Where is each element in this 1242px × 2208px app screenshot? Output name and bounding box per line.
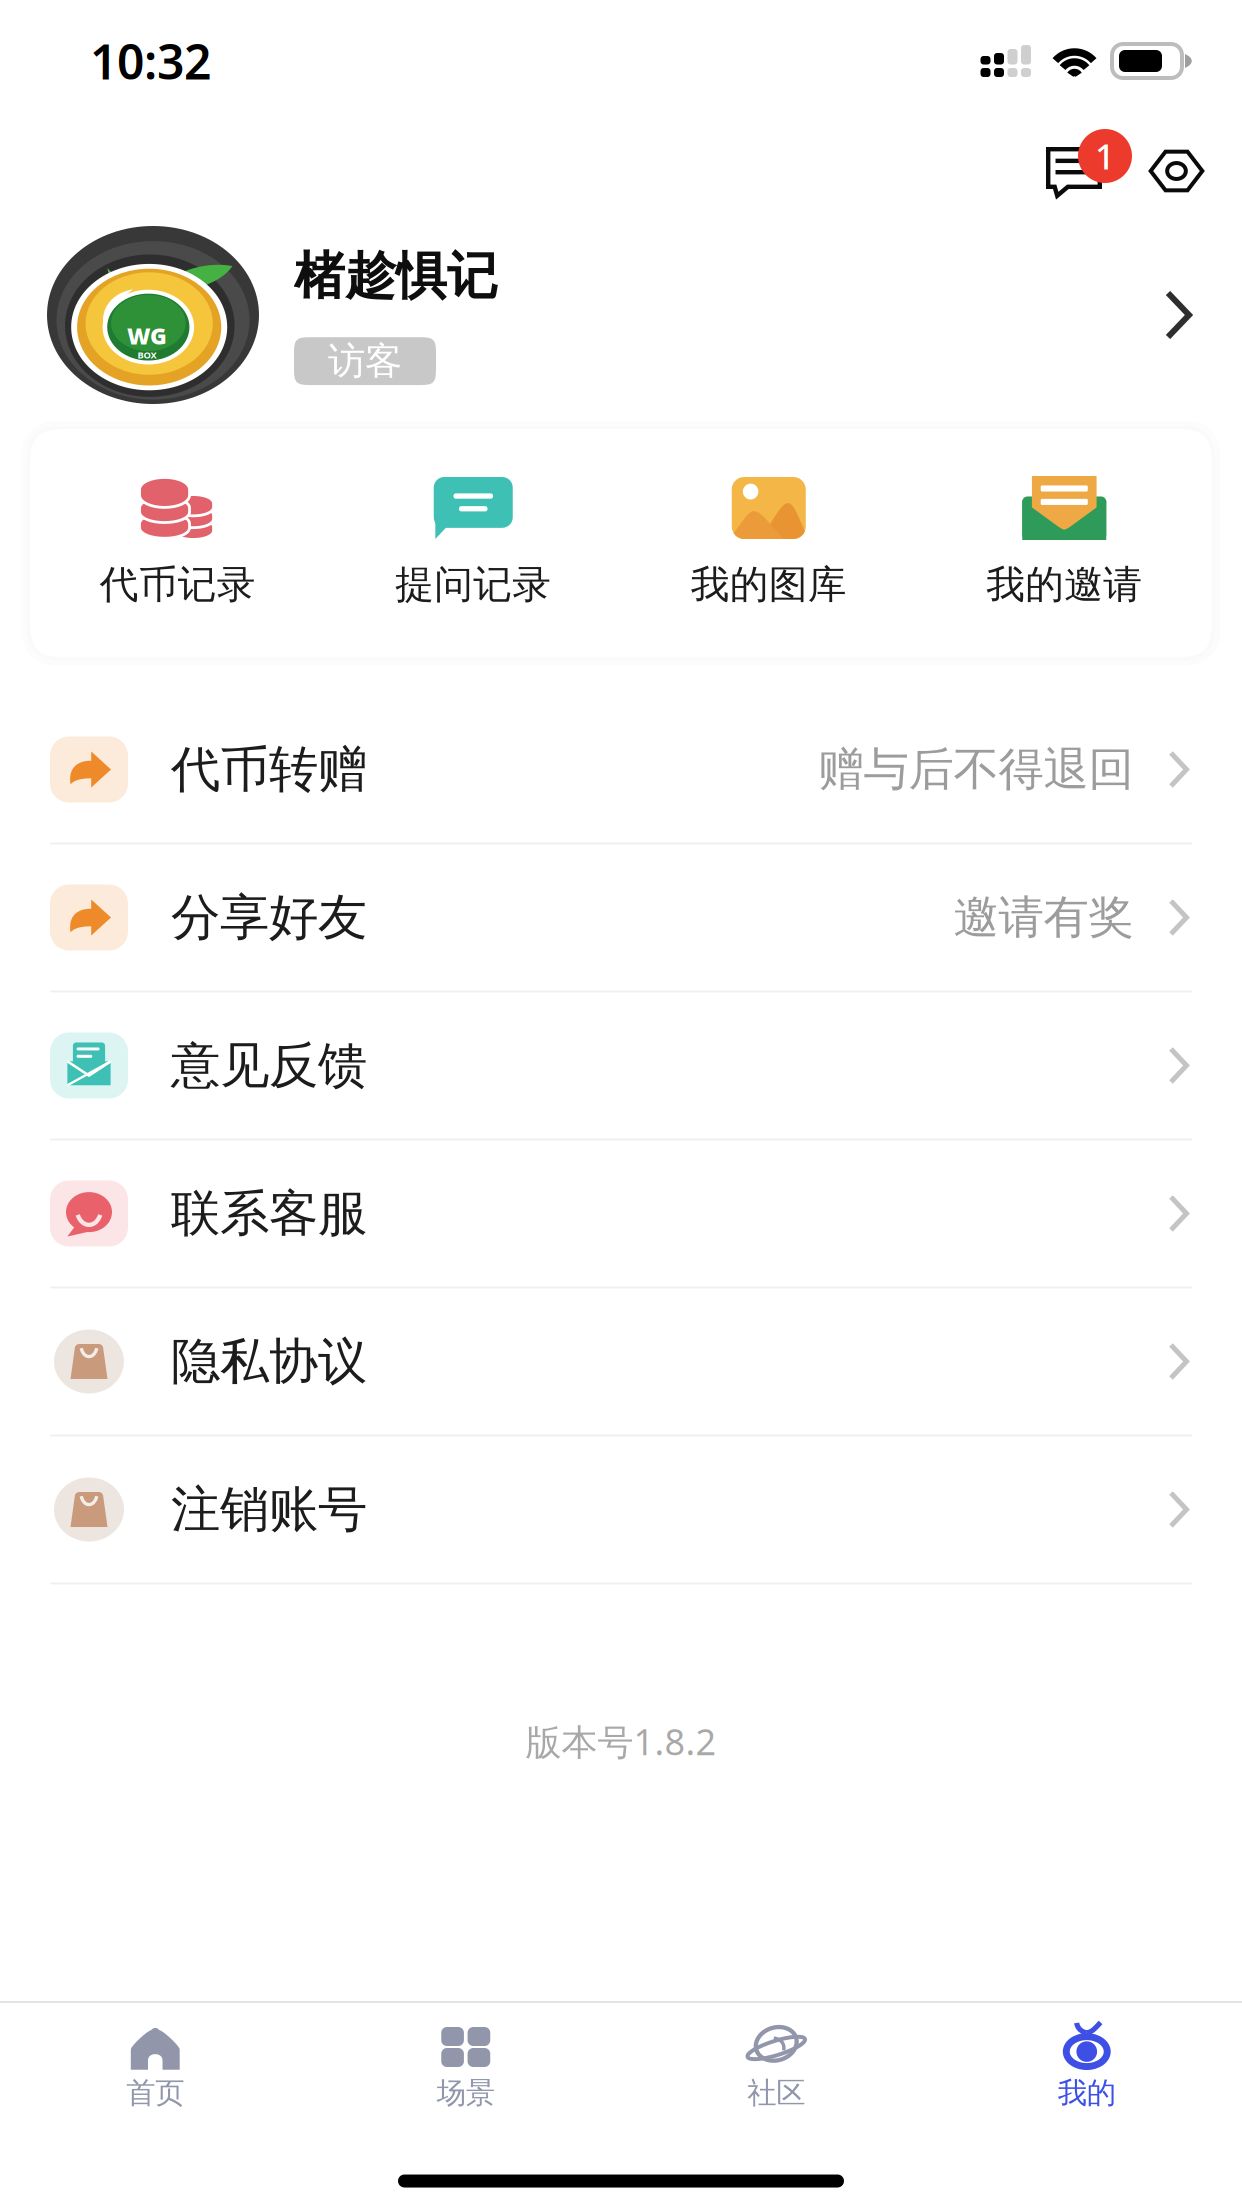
button[interactable]: 代币转赠	[0, 696, 1242, 842]
staticText: 邀请有奖	[953, 890, 1133, 945]
staticText: 我的邀请	[986, 561, 1142, 608]
button[interactable]: 隐私协议	[0, 1288, 1242, 1434]
button[interactable]: 首页	[0, 2003, 310, 2111]
button[interactable]: WG	[0, 222, 1242, 408]
staticText: 场景	[437, 2075, 495, 2111]
staticText: 版本号1.8.2	[525, 1717, 716, 1765]
button[interactable]: 社区	[621, 2003, 931, 2111]
staticText: BOX	[138, 349, 157, 361]
staticText: 意见反馈	[171, 1035, 367, 1096]
button[interactable]: 场景	[310, 2003, 621, 2111]
staticText: 访客	[328, 338, 402, 384]
button[interactable]: 注销账号	[0, 1436, 1242, 1582]
staticText: 赠与后不得退回	[818, 742, 1133, 797]
button[interactable]: 我的	[931, 2003, 1242, 2111]
button[interactable]: 联系客服	[0, 1140, 1242, 1286]
staticText: 10:32	[90, 29, 211, 93]
staticText: 分享好友	[171, 887, 367, 948]
staticText: 代币转赠	[171, 739, 367, 800]
staticText: 我的	[1058, 2075, 1116, 2111]
staticText: 1	[1095, 133, 1115, 179]
staticText: 注销账号	[171, 1479, 367, 1540]
staticText: 隐私协议	[171, 1331, 367, 1392]
button[interactable]: Settings	[1132, 122, 1204, 205]
staticText: 代币记录	[100, 561, 256, 608]
staticText: 首页	[126, 2075, 184, 2111]
staticText: 我的图库	[691, 561, 847, 608]
button[interactable]: 代币记录	[30, 477, 325, 608]
staticText: 社区	[747, 2075, 805, 2111]
button[interactable]: 提问记录	[325, 477, 621, 608]
button[interactable]: 我的邀请	[916, 477, 1212, 608]
button[interactable]: Messages	[1018, 122, 1132, 205]
staticText: 楮趁惧记	[294, 245, 498, 307]
staticText: 提问记录	[395, 561, 551, 608]
staticText: WG	[127, 321, 167, 351]
button[interactable]: 分享好友	[0, 844, 1242, 990]
button[interactable]: 我的图库	[621, 477, 916, 608]
staticText: 联系客服	[171, 1183, 367, 1244]
button[interactable]: 意见反馈	[0, 992, 1242, 1138]
